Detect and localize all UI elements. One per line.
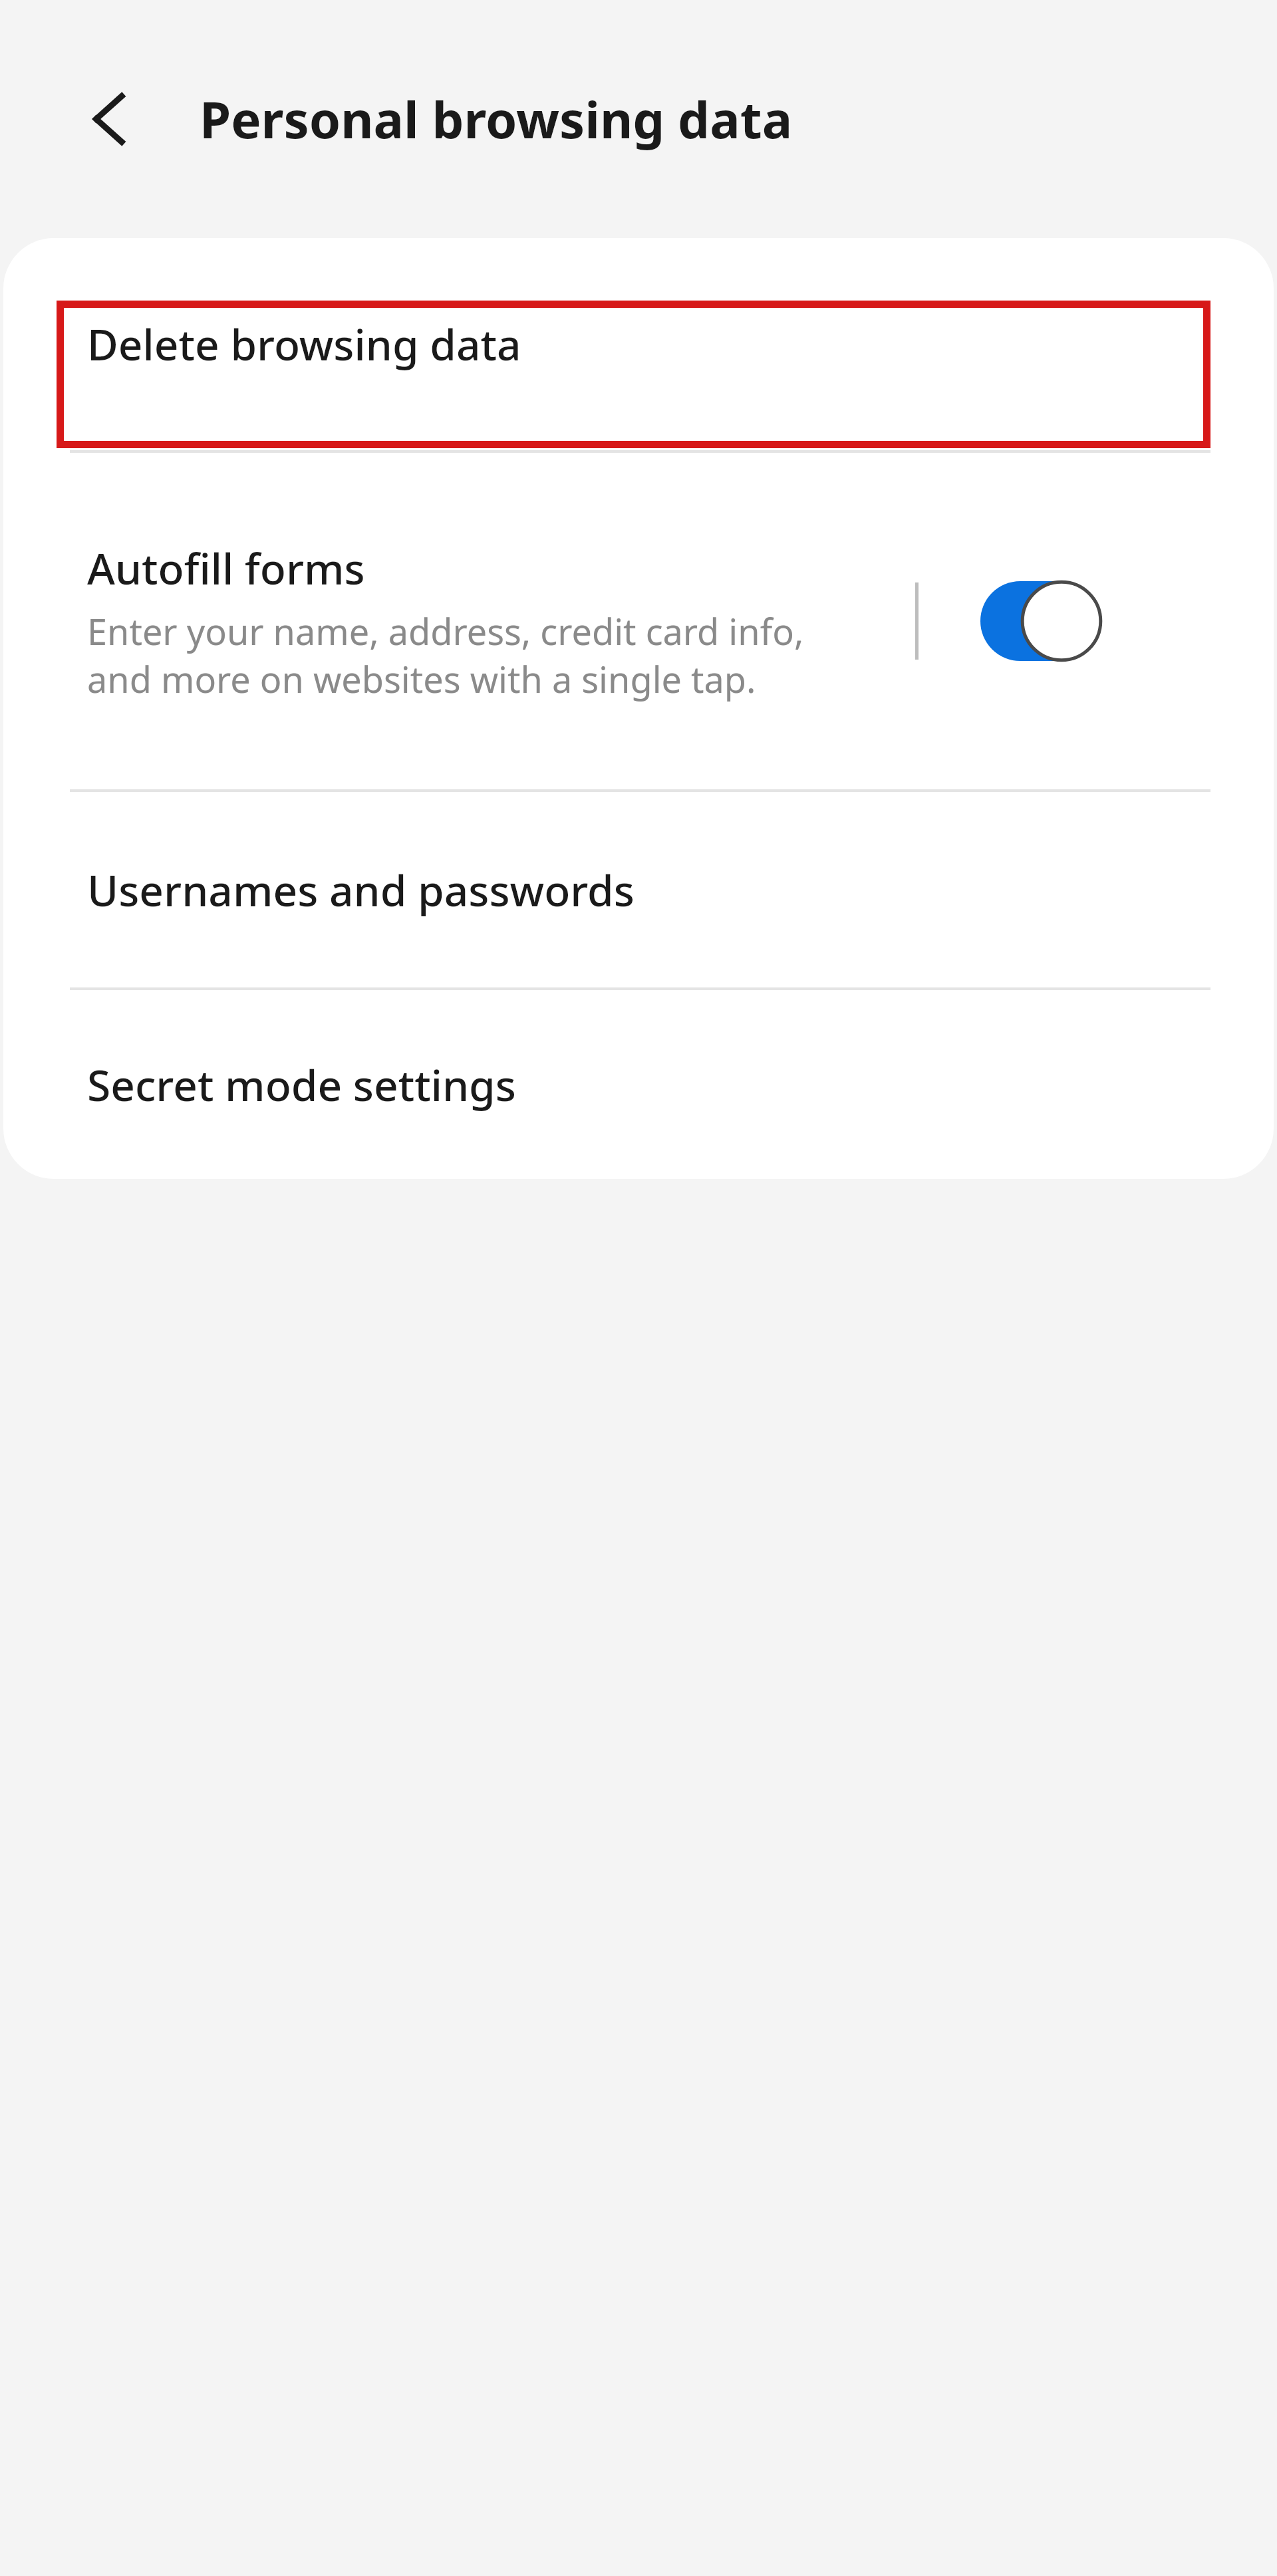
staticText: Personal browsing data	[200, 84, 793, 154]
button[interactable]: Delete browsing data	[3, 238, 1274, 450]
button[interactable]: Back	[65, 73, 157, 165]
button[interactable]: Autofill forms toggle, on	[974, 575, 1107, 668]
staticText: Delete browsing data	[87, 315, 521, 373]
button[interactable]: Usernames and passwords	[3, 792, 1274, 987]
staticText: Autofill forms	[87, 539, 365, 597]
staticText: Usernames and passwords	[87, 861, 635, 919]
staticText: Secret mode settings	[87, 1056, 516, 1114]
button[interactable]: Autofill forms	[3, 453, 1274, 789]
button[interactable]: Secret mode settings	[3, 990, 1274, 1179]
staticText: Enter your name, address, credit card in…	[87, 606, 875, 704]
